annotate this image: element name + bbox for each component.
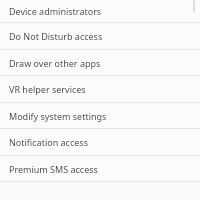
staticText: Device administrators bbox=[9, 5, 102, 17]
staticText: VR helper services bbox=[9, 83, 86, 95]
staticText: Notification access bbox=[9, 136, 88, 148]
staticText: Draw over other apps bbox=[9, 57, 101, 69]
button[interactable]: Notification access bbox=[0, 129, 200, 156]
button[interactable]: Do Not Disturb access bbox=[0, 23, 200, 50]
button[interactable]: VR helper services bbox=[0, 76, 200, 103]
button[interactable]: Device administrators bbox=[0, 0, 200, 23]
staticText: Do Not Disturb access bbox=[9, 30, 103, 42]
staticText: Premium SMS access bbox=[9, 163, 98, 175]
button[interactable]: Modify system settings bbox=[0, 103, 200, 129]
button[interactable]: Draw over other apps bbox=[0, 50, 200, 76]
button[interactable]: Premium SMS access bbox=[0, 156, 200, 182]
staticText: Modify system settings bbox=[9, 110, 107, 122]
